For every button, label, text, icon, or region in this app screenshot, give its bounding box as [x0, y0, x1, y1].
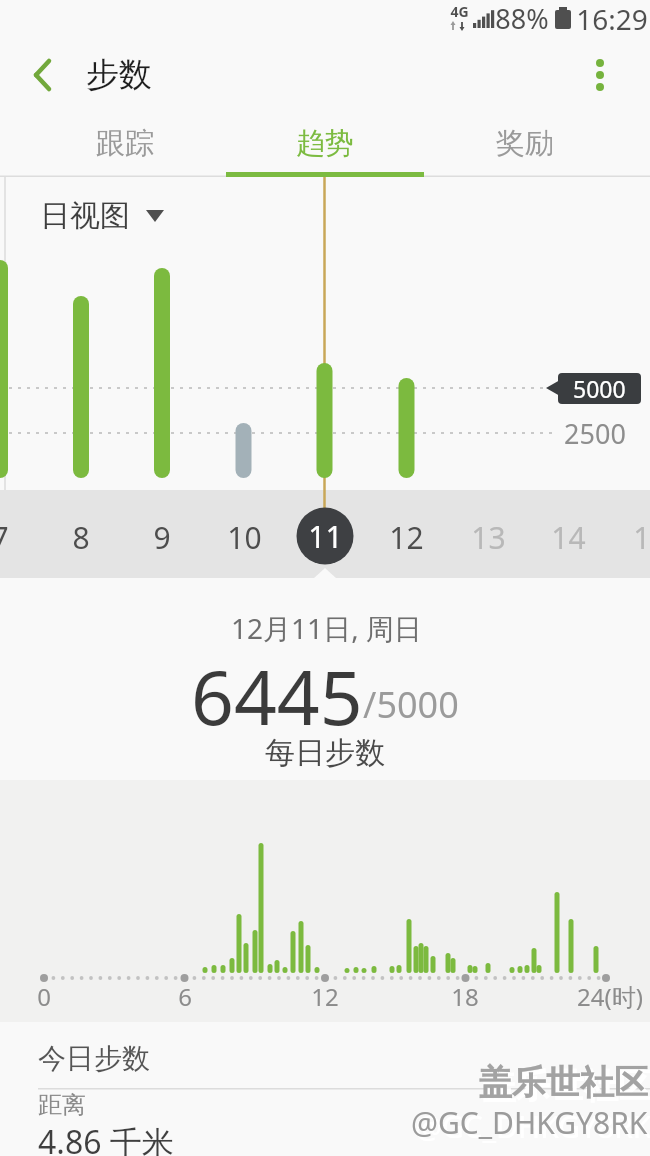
staticText: 距离 — [38, 1090, 86, 1120]
button[interactable]: 日视图 — [30, 196, 176, 236]
staticText: 10 — [227, 517, 262, 558]
button[interactable] — [578, 50, 624, 100]
button[interactable]: 9 — [132, 512, 192, 562]
button[interactable]: 14 — [538, 512, 598, 562]
staticText: 12 — [389, 517, 424, 558]
staticText: 15 — [633, 517, 650, 558]
staticText: 12 — [311, 980, 339, 1013]
staticText: 18 — [451, 980, 479, 1013]
staticText: 13 — [471, 517, 506, 558]
button[interactable]: 12 — [376, 512, 436, 562]
button[interactable]: 13 — [458, 512, 518, 562]
staticText: @GC_DHKGY8RK — [411, 1102, 648, 1143]
staticText: 每日步数 — [265, 734, 385, 772]
staticText: 跟踪 — [96, 125, 154, 162]
staticText: 盖乐世社区 — [478, 1061, 648, 1104]
button[interactable] — [20, 52, 70, 98]
staticText: 6 — [178, 980, 192, 1013]
button[interactable]: 8 — [51, 512, 111, 562]
staticText: 日视图 — [40, 197, 130, 235]
staticText: 11 — [308, 516, 343, 557]
button[interactable]: 10 — [214, 512, 274, 562]
staticText: 5000 — [573, 373, 626, 404]
button[interactable]: 跟踪 — [26, 110, 224, 176]
button[interactable]: 趋势 — [226, 110, 424, 176]
staticText: 2500 — [564, 415, 626, 452]
staticText: 4G — [450, 2, 469, 21]
staticText: @GC_DHKGY8RK — [415, 1106, 650, 1147]
staticText: 0 — [37, 980, 51, 1013]
staticText: 8 — [72, 517, 90, 558]
staticText: 步数 — [86, 54, 152, 96]
staticText: 12月11日, 周日 — [231, 609, 422, 647]
staticText: 今日步数 — [38, 1041, 150, 1076]
staticText: 7 — [0, 517, 9, 558]
staticText: 9 — [153, 517, 171, 558]
staticText: 奖励 — [496, 125, 554, 162]
staticText: 盖乐世社区 — [482, 1065, 650, 1108]
staticText: 24(时) — [577, 980, 643, 1013]
staticText: 14 — [551, 517, 586, 558]
staticText: 16:29 — [576, 0, 648, 36]
staticText: 88% — [495, 0, 549, 36]
staticText: 趋势 — [296, 125, 354, 162]
button[interactable]: 11 — [295, 511, 355, 561]
button[interactable]: 7 — [0, 512, 30, 562]
staticText: 6445 — [191, 645, 363, 735]
button[interactable]: 奖励 — [426, 110, 624, 176]
staticText: 4.86 千米 — [38, 1120, 174, 1156]
staticText: /5000 — [363, 680, 459, 729]
